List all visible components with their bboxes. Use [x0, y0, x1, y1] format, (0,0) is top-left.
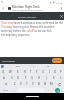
staticText: Q	[2, 70, 5, 74]
staticText: P	[60, 70, 62, 74]
button[interactable]: Backspace	[54, 81, 64, 87]
staticText: Z	[14, 82, 16, 86]
button[interactable]: P	[58, 69, 64, 75]
staticText: Titan crew launch window is now confirme…	[1, 21, 63, 25]
staticText: ●	[53, 1, 55, 3]
staticText: G	[31, 76, 34, 80]
button[interactable]: More options	[59, 6, 63, 10]
staticText: N	[44, 82, 47, 86]
staticText: J	[46, 76, 47, 80]
button[interactable]: A	[0, 75, 8, 81]
button[interactable]: J	[43, 75, 50, 81]
staticText: the	[16, 65, 20, 68]
button[interactable]: B	[36, 81, 42, 87]
button[interactable]: Back	[1, 6, 5, 10]
staticText: C	[26, 82, 28, 86]
button[interactable]: Account	[8, 7, 11, 10]
button[interactable]: ?123	[1, 87, 10, 93]
staticText: ▲	[50, 1, 52, 3]
staticText: ?123	[3, 89, 8, 92]
button[interactable]: L	[57, 75, 64, 81]
button[interactable]: O	[52, 69, 58, 75]
button[interactable]: K	[50, 75, 57, 81]
button[interactable]: E	[14, 69, 21, 75]
staticText: D	[17, 76, 20, 80]
staticText: Thursday morning slot. Review the manife…	[1, 25, 55, 29]
staticText: V	[32, 82, 34, 86]
staticText: F	[25, 76, 27, 80]
staticText: A	[3, 76, 5, 80]
staticText: B	[38, 82, 40, 86]
button[interactable]: W	[7, 69, 14, 75]
button[interactable]: M	[48, 81, 54, 87]
staticText: Meridian Flight Desk	[12, 5, 40, 9]
staticText: Y	[36, 70, 38, 74]
button[interactable]: U	[40, 69, 46, 75]
staticText: I	[33, 65, 34, 68]
staticText: E	[17, 70, 19, 74]
staticText: Draft saved	[2, 59, 52, 62]
staticText: ,	[14, 88, 15, 92]
staticText: updates@meridian.example	[12, 9, 43, 12]
button[interactable]: F	[22, 75, 29, 81]
button[interactable]: Resend	[52, 58, 62, 63]
staticText: R	[24, 70, 26, 74]
staticText: and reply before the cutoff so we can lo…	[1, 29, 52, 33]
button[interactable]: S	[8, 75, 15, 81]
button[interactable]: Z	[11, 81, 18, 87]
button[interactable]: V	[30, 81, 36, 87]
button[interactable]: G	[29, 75, 36, 81]
staticText: O	[54, 70, 57, 74]
staticText: W	[9, 70, 12, 74]
button[interactable]: X	[18, 81, 24, 87]
staticText: Resend	[53, 59, 61, 62]
staticText: S	[11, 76, 13, 80]
staticText: 12:45	[56, 1, 63, 4]
staticText: .	[48, 88, 49, 92]
button[interactable]: N	[42, 81, 48, 87]
button[interactable]: Enter	[55, 88, 60, 93]
button[interactable]: H	[36, 75, 43, 81]
staticText: H	[38, 76, 41, 80]
button[interactable]: C	[24, 81, 30, 87]
staticText: X	[20, 82, 22, 86]
button[interactable]: Q	[0, 69, 7, 75]
button[interactable]: Comma	[10, 87, 18, 93]
staticText: the boarding sequence.	[1, 33, 30, 37]
staticText: Images blocked	[18, 15, 59, 18]
button[interactable]: Dismiss	[59, 14, 63, 18]
button[interactable]: Y	[34, 69, 40, 75]
staticText: I	[49, 70, 50, 74]
staticText: T	[30, 70, 32, 74]
button[interactable]: R	[21, 69, 28, 75]
button[interactable]: Shift	[0, 81, 11, 87]
button[interactable]: I	[46, 69, 52, 75]
staticText: to	[47, 65, 50, 68]
staticText: K	[53, 76, 55, 80]
button[interactable]: D	[15, 75, 22, 81]
button[interactable]: T	[28, 69, 34, 75]
staticText: U	[42, 70, 45, 74]
staticText: L	[60, 76, 62, 80]
staticText: M	[50, 82, 53, 86]
